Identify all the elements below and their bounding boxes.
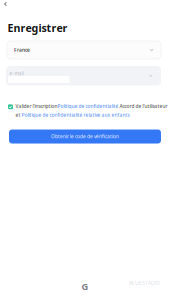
button[interactable]: France <box>7 41 161 59</box>
button[interactable]: Valider l'inscription <box>8 104 13 109</box>
staticText: Enregistrer <box>8 20 68 35</box>
staticText: France <box>14 47 30 53</box>
staticText: et <box>16 112 22 118</box>
staticText: Valider l'inscription <box>16 103 58 109</box>
staticText: Accord de l'utilisateur <box>119 103 168 109</box>
button[interactable]: Obtenir le code de vérification <box>9 129 161 143</box>
staticText: Obtenir le code de vérification <box>51 133 119 140</box>
button[interactable]: Back <box>0 0 10 9</box>
staticText: BLUESTACKS <box>129 279 160 286</box>
staticText: Politique de confidentialité relative au… <box>22 112 130 118</box>
staticText: e-mail <box>9 70 23 76</box>
staticText: Politique de confidentialité <box>58 103 119 109</box>
staticText: G <box>81 280 88 293</box>
